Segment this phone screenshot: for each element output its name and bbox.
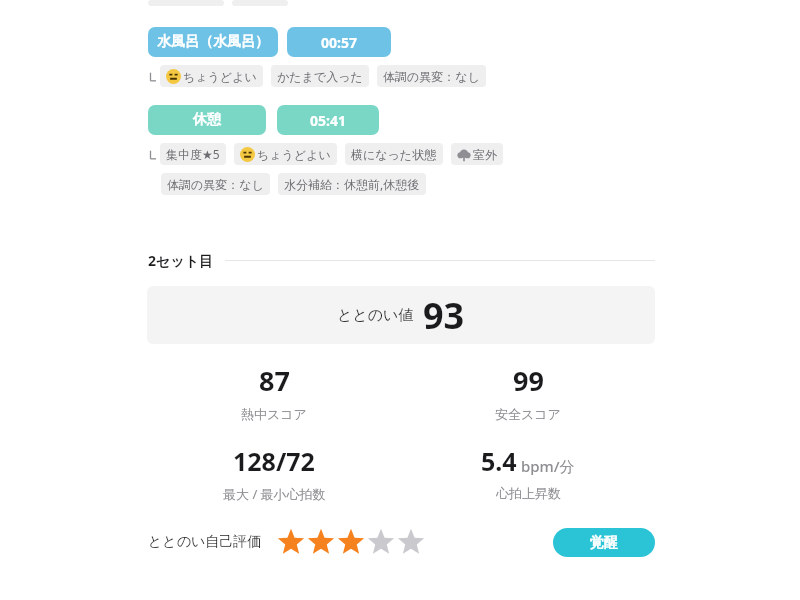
button[interactable]: Rating 3 of 5 <box>276 527 426 557</box>
staticText: 横になった状態 <box>351 147 437 162</box>
staticText: 05:41 <box>310 111 346 130</box>
staticText: 00:57 <box>321 33 357 52</box>
staticText: 休憩 <box>193 111 221 129</box>
staticText: bpm/分 <box>517 456 575 476</box>
staticText: 安全スコア <box>495 406 561 422</box>
staticText: ちょうどよい <box>183 69 257 84</box>
staticText: 熱中スコア <box>241 406 307 422</box>
staticText: 2セット目 <box>148 251 213 270</box>
staticText: 心拍上昇数 <box>496 485 561 501</box>
button[interactable]: 水風呂（水風呂） <box>148 27 278 57</box>
button[interactable]: 覚醒 <box>553 528 655 557</box>
staticText: 集中度★5 <box>166 146 220 162</box>
button[interactable]: ちょうどよい <box>160 65 263 87</box>
button[interactable]: 05:41 <box>277 105 379 135</box>
staticText: 室外 <box>473 147 497 162</box>
staticText: 最大 / 最小心拍数 <box>223 485 326 503</box>
staticText: 128/72 <box>233 444 315 478</box>
staticText: 体調の異変：なし <box>383 69 480 84</box>
staticText: 87 <box>259 362 290 399</box>
button[interactable]: 体調の異変：なし <box>377 65 486 87</box>
button[interactable]: ととのい値 <box>147 286 655 344</box>
button[interactable]: 室外 <box>451 143 503 165</box>
staticText: 水風呂（水風呂） <box>157 33 269 51</box>
staticText: ととのい自己評価 <box>148 533 262 551</box>
staticText: 覚醒 <box>590 534 618 552</box>
button[interactable]: かたまで入った <box>271 65 369 87</box>
staticText: かたまで入った <box>277 69 363 84</box>
staticText: ちょうどよい <box>257 147 331 162</box>
button[interactable]: ちょうどよい <box>234 143 337 165</box>
staticText: ととのい値 <box>337 306 414 325</box>
staticText: 93 <box>423 291 465 340</box>
button[interactable]: 横になった状態 <box>345 143 443 165</box>
button[interactable]: 体調の異変：なし <box>161 173 270 195</box>
staticText: 水分補給：休憩前,休憩後 <box>284 176 420 192</box>
button[interactable]: 集中度★5 <box>160 143 226 165</box>
staticText: 99 <box>513 362 544 399</box>
button[interactable]: 休憩 <box>148 105 266 135</box>
button[interactable]: 00:57 <box>287 27 391 57</box>
staticText: 体調の異変：なし <box>167 177 264 192</box>
button[interactable]: 水分補給：休憩前,休憩後 <box>278 173 426 195</box>
staticText: 5.4 <box>481 444 517 478</box>
